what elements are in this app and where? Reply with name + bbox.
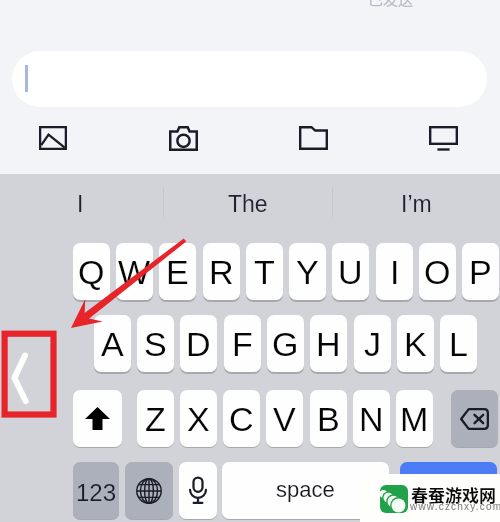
button[interactable]: Screen cast bbox=[423, 118, 463, 158]
staticText: A bbox=[101, 325, 124, 363]
staticText: U bbox=[338, 253, 363, 291]
button[interactable]: Y bbox=[289, 243, 326, 300]
button[interactable]: Backspace bbox=[451, 390, 498, 447]
button[interactable]: G bbox=[267, 315, 304, 372]
button[interactable]: J bbox=[354, 315, 391, 372]
button[interactable]: T bbox=[246, 243, 283, 300]
button[interactable]: V bbox=[266, 390, 303, 447]
button[interactable]: I’m bbox=[344, 182, 488, 226]
button[interactable]: Switch keyboard language bbox=[125, 462, 173, 519]
staticText: H bbox=[316, 325, 341, 363]
staticText: X bbox=[187, 400, 210, 438]
staticText: Y bbox=[296, 253, 319, 291]
button[interactable]: Voice input bbox=[179, 462, 217, 519]
staticText: 已发送 bbox=[368, 0, 414, 10]
button[interactable]: N bbox=[353, 390, 390, 447]
button[interactable]: U bbox=[332, 243, 369, 300]
button[interactable]: O bbox=[419, 243, 456, 300]
button[interactable]: Gallery bbox=[33, 118, 73, 158]
button[interactable]: A bbox=[94, 315, 131, 372]
button[interactable]: W bbox=[116, 243, 153, 300]
button[interactable] bbox=[12, 51, 487, 107]
staticText: W bbox=[118, 253, 151, 291]
button[interactable]: K bbox=[397, 315, 434, 372]
staticText: S bbox=[144, 325, 167, 363]
button[interactable]: R bbox=[203, 243, 240, 300]
button[interactable]: I bbox=[8, 182, 152, 226]
staticText: The bbox=[228, 191, 268, 217]
button[interactable]: E bbox=[159, 243, 196, 300]
button[interactable]: C bbox=[223, 390, 260, 447]
button[interactable]: L bbox=[440, 315, 477, 372]
staticText: T bbox=[254, 253, 275, 291]
staticText: P bbox=[469, 253, 492, 291]
staticText: 123 bbox=[76, 479, 117, 506]
staticText: M bbox=[400, 400, 429, 438]
staticText: C bbox=[229, 400, 254, 438]
button[interactable]: Camera bbox=[163, 118, 203, 158]
staticText: E bbox=[166, 253, 189, 291]
staticText: Z bbox=[145, 400, 166, 438]
button[interactable]: H bbox=[310, 315, 347, 372]
staticText: www.czchxy.com bbox=[410, 501, 500, 512]
button[interactable]: X bbox=[180, 390, 217, 447]
button[interactable]: I bbox=[376, 243, 413, 300]
button[interactable]: 123 bbox=[73, 462, 119, 519]
button[interactable]: B bbox=[310, 390, 347, 447]
staticText: I’m bbox=[401, 191, 432, 217]
button[interactable]: D bbox=[180, 315, 217, 372]
button[interactable]: The bbox=[176, 182, 320, 226]
button[interactable] bbox=[400, 462, 497, 519]
staticText: 春蚕游戏网 bbox=[411, 482, 496, 507]
button[interactable]: P bbox=[462, 243, 499, 300]
button[interactable]: S bbox=[137, 315, 174, 372]
staticText: I bbox=[77, 191, 84, 217]
staticText: B bbox=[317, 400, 340, 438]
staticText: N bbox=[359, 400, 384, 438]
button[interactable]: M bbox=[396, 390, 433, 447]
staticText: O bbox=[424, 253, 451, 291]
button[interactable]: F bbox=[224, 315, 261, 372]
button[interactable]: Files bbox=[293, 118, 333, 158]
staticText: I bbox=[390, 253, 400, 291]
staticText: J bbox=[364, 325, 381, 363]
staticText: G bbox=[272, 325, 299, 363]
button[interactable]: Q bbox=[73, 243, 110, 300]
staticText: V bbox=[273, 400, 296, 438]
staticText: F bbox=[232, 325, 253, 363]
button[interactable]: space bbox=[222, 462, 389, 519]
staticText: R bbox=[209, 253, 234, 291]
button[interactable]: Z bbox=[137, 390, 174, 447]
staticText: D bbox=[186, 325, 211, 363]
staticText: space bbox=[276, 477, 335, 502]
button[interactable]: Shift bbox=[73, 390, 122, 447]
staticText: K bbox=[404, 325, 427, 363]
staticText: Q bbox=[78, 253, 105, 291]
staticText: L bbox=[449, 325, 468, 363]
